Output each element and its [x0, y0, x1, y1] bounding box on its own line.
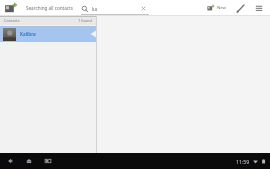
button[interactable]: Edit	[233, 0, 249, 16]
staticText: Searching all contacts	[26, 5, 73, 11]
staticText: 1 found	[78, 18, 92, 23]
button[interactable]: Contacts app	[4, 1, 18, 15]
button[interactable]: Kalibra	[0, 26, 96, 42]
button[interactable]: 11:59	[236, 153, 270, 169]
button[interactable]: Recent apps	[42, 155, 54, 167]
button[interactable]: More options	[251, 0, 267, 16]
staticText: New	[217, 5, 226, 11]
staticText: Kalibra	[20, 31, 36, 37]
button[interactable]: New	[204, 4, 229, 12]
button[interactable]: Back	[4, 155, 16, 167]
staticText: Contacts	[4, 18, 20, 23]
staticText: 11:59	[236, 158, 250, 165]
staticText: ka	[92, 6, 98, 12]
button[interactable]: Home	[23, 155, 35, 167]
button[interactable]: Clear search	[139, 4, 148, 13]
button[interactable]: ka	[81, 1, 149, 15]
